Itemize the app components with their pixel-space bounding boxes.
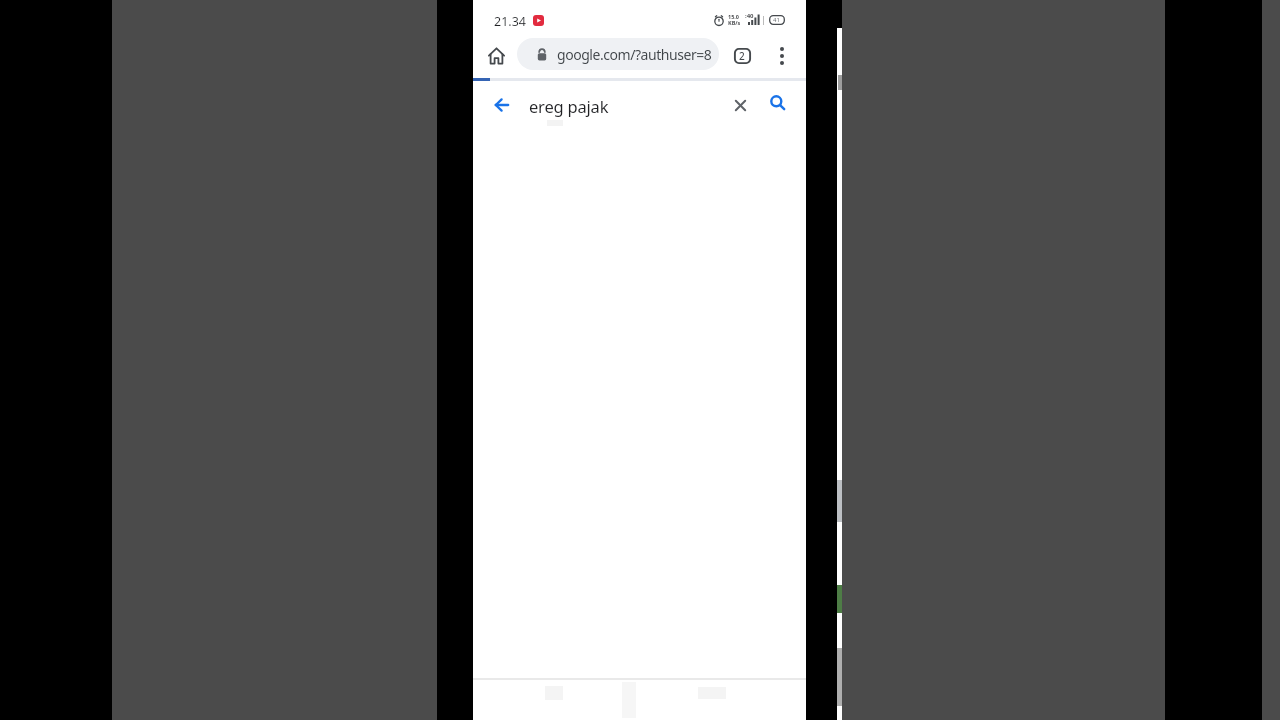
staticText: 2 [739, 49, 745, 63]
button[interactable] [483, 43, 509, 69]
button[interactable]: ereg pajak [529, 95, 609, 117]
button[interactable] [769, 43, 795, 69]
button[interactable]: 2 [729, 43, 755, 69]
staticText: 15.0 [728, 13, 739, 20]
button[interactable] [766, 91, 790, 115]
staticText: KB/s [728, 19, 741, 26]
staticText: :40 [745, 12, 754, 20]
staticText: google.com/?authuser=8 [557, 45, 712, 64]
button[interactable] [490, 93, 514, 117]
button[interactable] [728, 93, 752, 117]
staticText: 41 [773, 16, 780, 24]
button[interactable]: google.com/?authuser=8 [517, 38, 719, 70]
staticText: 21.34 [494, 13, 526, 30]
